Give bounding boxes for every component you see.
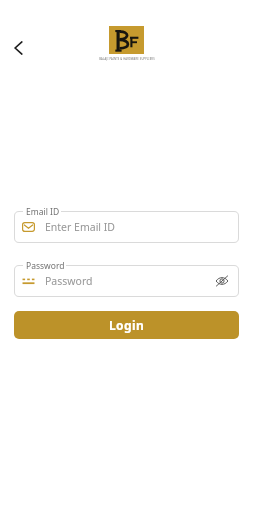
staticText: Login [109,317,145,333]
staticText: BALAJI PAINTS & HARDWARE SUPPLIERS [99,57,155,61]
button[interactable]: Back [4,33,34,63]
button[interactable]: Login [14,311,239,339]
staticText: Password [26,260,65,272]
button[interactable]: Password [14,259,239,297]
button[interactable]: Show password [213,272,231,290]
staticText: Password [45,274,93,288]
staticText: Enter Email ID [45,220,116,234]
button[interactable]: Enter Email ID [14,205,239,243]
staticText: Email ID [26,206,60,218]
